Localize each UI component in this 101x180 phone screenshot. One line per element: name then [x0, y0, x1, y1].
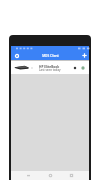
button[interactable]: Add device — [80, 51, 89, 60]
button[interactable]: Locate — [71, 64, 78, 71]
staticText: Last seen today — [39, 68, 61, 72]
button[interactable]: :: — [11, 61, 89, 74]
staticText: MDS Client — [21, 54, 80, 58]
button[interactable]: Navigation menu — [13, 52, 21, 60]
staticText: HP EliteBook — [39, 65, 60, 69]
button[interactable]: Back — [24, 171, 33, 180]
button[interactable]: Home — [46, 171, 55, 180]
button[interactable]: Online status — [79, 64, 86, 71]
staticText: :: — [31, 66, 33, 70]
button[interactable]: Recent apps — [67, 171, 76, 180]
